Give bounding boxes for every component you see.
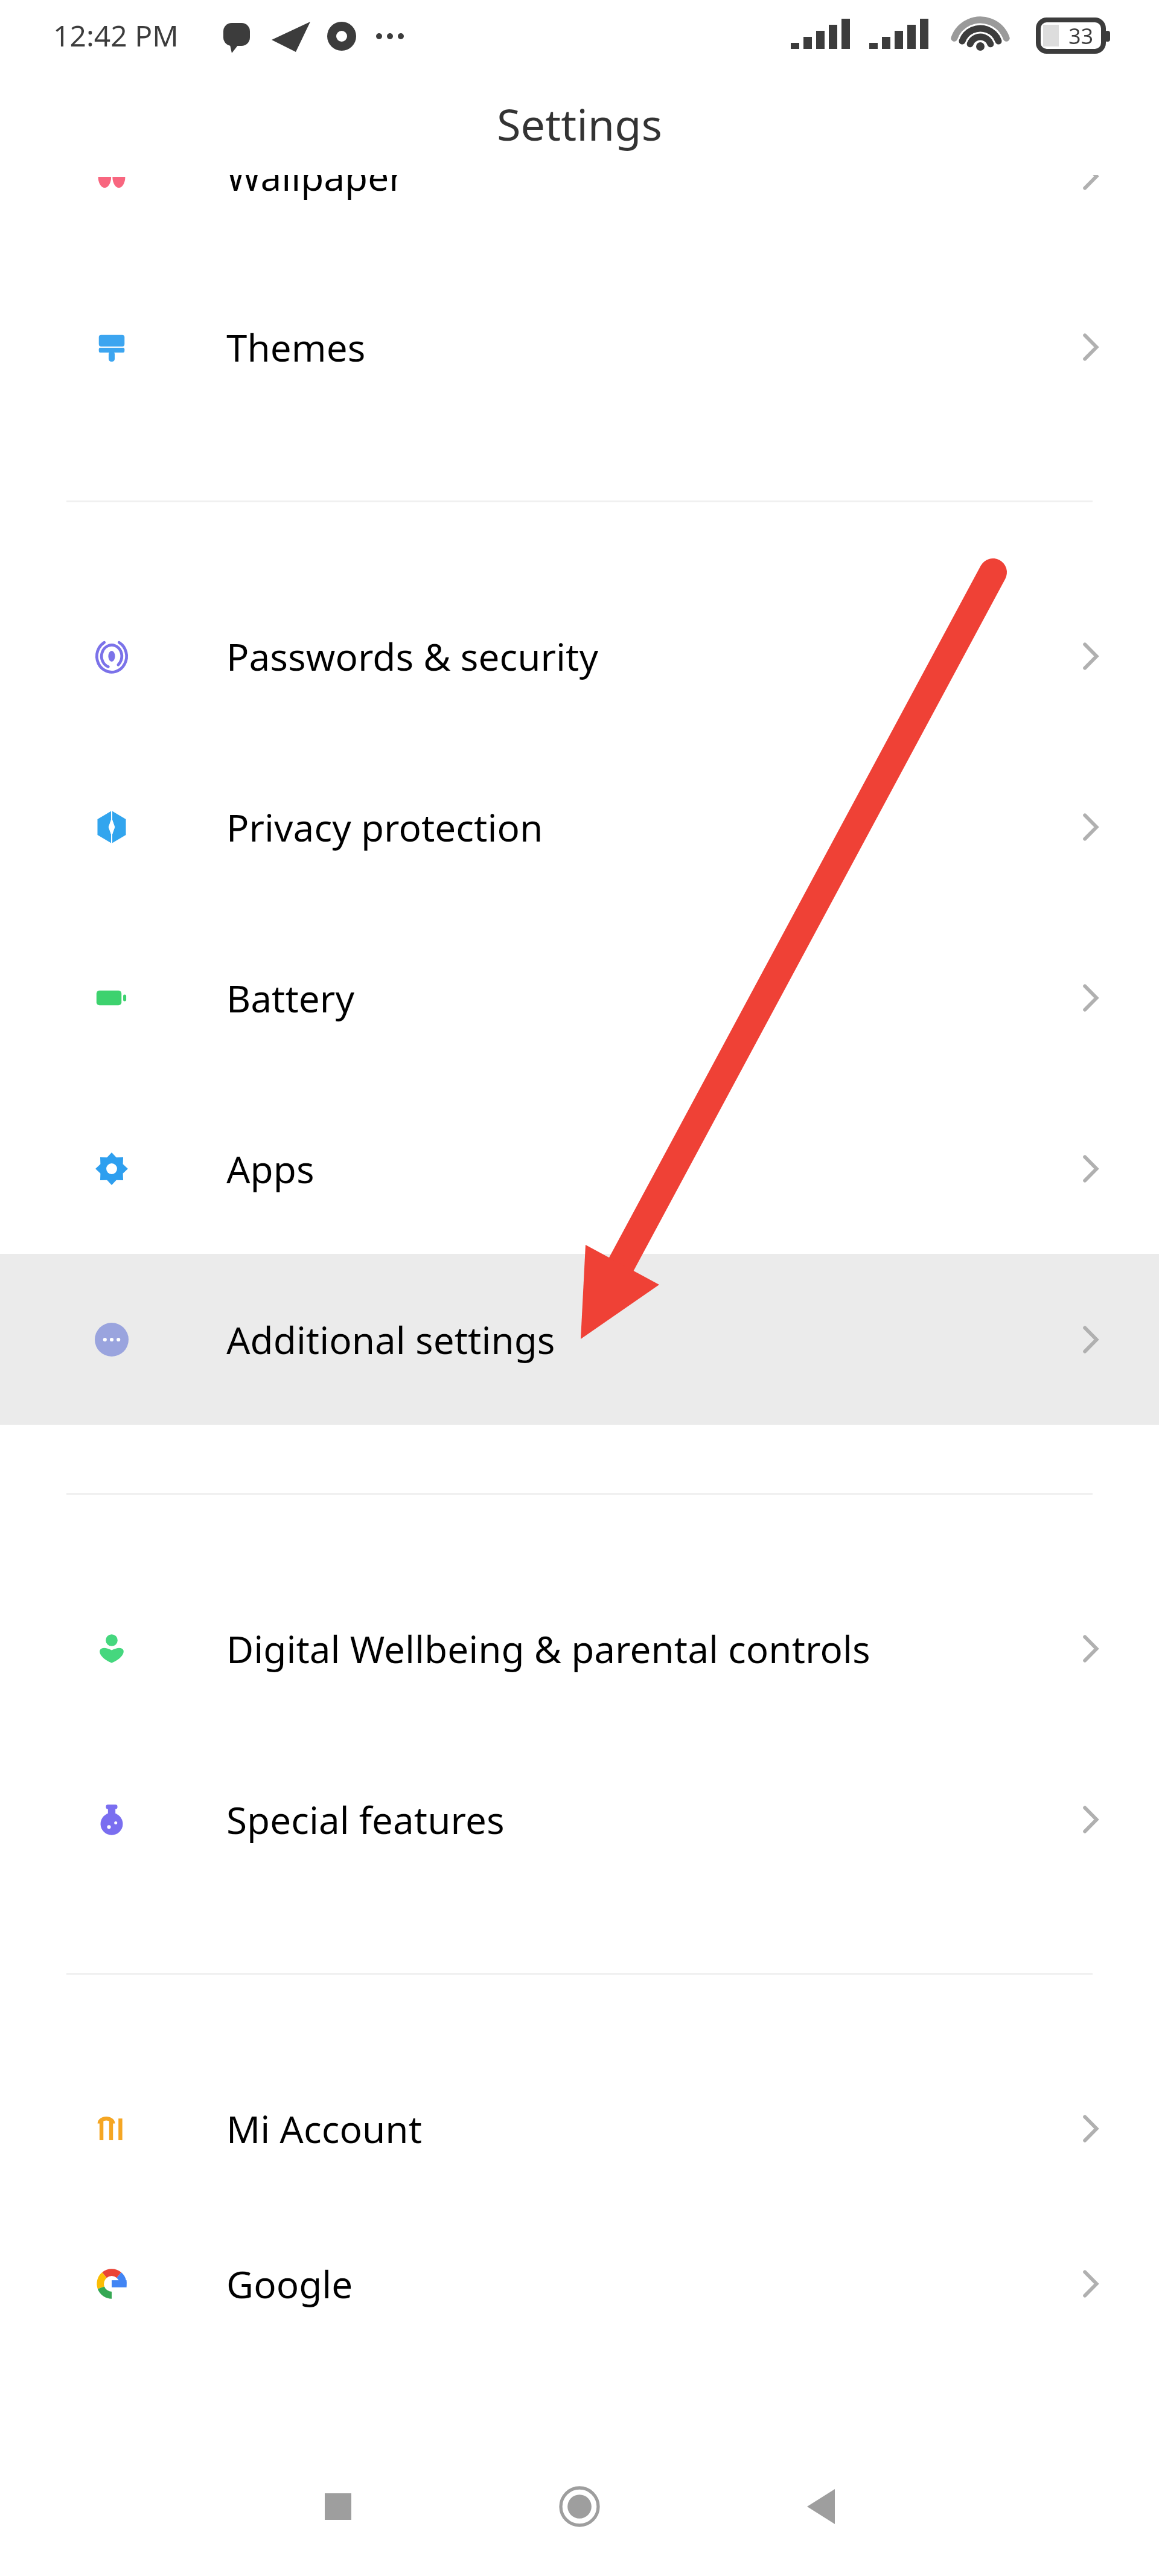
staticText: Apps <box>226 1143 1011 1194</box>
staticText: Digital Wellbeing & parental controls <box>226 1623 902 1674</box>
staticText: 12:42 PM <box>53 16 179 55</box>
staticText: Privacy protection <box>226 802 1011 852</box>
staticText: Additional settings <box>226 1314 1011 1365</box>
button[interactable]: Wallpaper <box>0 175 1159 261</box>
staticText: Settings <box>497 94 662 153</box>
staticText: Passwords & security <box>226 631 1011 682</box>
button[interactable]: Mi Account <box>0 2043 1159 2214</box>
button[interactable]: Themes <box>0 261 1159 432</box>
button[interactable]: Privacy protection <box>0 741 1159 912</box>
button[interactable]: Battery <box>0 912 1159 1083</box>
button[interactable]: Back <box>785 2470 857 2543</box>
button[interactable]: Digital Wellbeing & parental controls <box>0 1563 1159 1734</box>
button[interactable]: Google <box>0 2214 1159 2353</box>
staticText: Themes <box>226 322 1011 372</box>
staticText: Google <box>226 2258 1011 2309</box>
button[interactable]: Additional settings <box>0 1254 1159 1425</box>
button[interactable]: Recents <box>302 2470 374 2543</box>
button[interactable]: Passwords & security <box>0 570 1159 741</box>
button[interactable]: Special features <box>0 1734 1159 1905</box>
staticText: 33 <box>1068 21 1094 51</box>
button[interactable]: Apps <box>0 1083 1159 1254</box>
button[interactable]: Home <box>540 2467 619 2546</box>
staticText: Wallpaper <box>226 175 1011 202</box>
staticText: Mi Account <box>226 2103 1011 2154</box>
staticText: Battery <box>226 973 1011 1023</box>
staticText: Special features <box>226 1794 1011 1845</box>
